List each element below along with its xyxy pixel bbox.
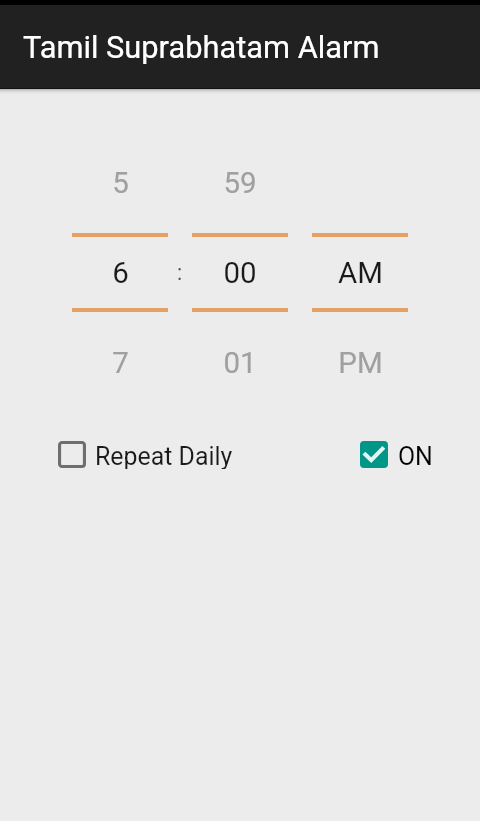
- button[interactable]: ON: [360, 441, 433, 468]
- button[interactable]: Minute: [192, 150, 288, 390]
- staticText: 7: [112, 346, 129, 376]
- staticText: :: [177, 260, 183, 285]
- staticText: 01: [223, 346, 257, 376]
- staticText: PM: [338, 346, 383, 376]
- staticText: ON: [398, 442, 433, 469]
- staticText: 5: [112, 166, 129, 196]
- button[interactable]: Hour: [72, 150, 168, 390]
- staticText: 59: [223, 166, 257, 196]
- staticText: AM: [338, 256, 383, 286]
- staticText: Tamil Suprabhatam Alarm: [23, 29, 380, 65]
- staticText: 6: [112, 256, 129, 286]
- staticText: Repeat Daily: [95, 442, 233, 469]
- staticText: 00: [223, 256, 257, 286]
- button[interactable]: AM or PM: [312, 150, 408, 390]
- button[interactable]: Repeat Daily: [58, 441, 233, 468]
